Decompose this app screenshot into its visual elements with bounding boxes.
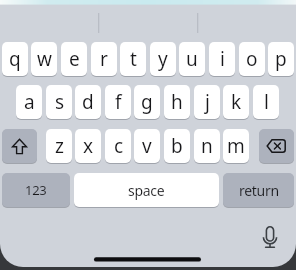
button[interactable]: b bbox=[164, 129, 190, 163]
button[interactable]: n bbox=[194, 129, 220, 163]
staticText: k bbox=[231, 89, 241, 115]
button[interactable]: h bbox=[164, 85, 190, 119]
staticText: m bbox=[227, 133, 245, 159]
staticText: 123 bbox=[25, 181, 47, 199]
staticText: g bbox=[141, 89, 153, 115]
staticText: q bbox=[9, 46, 21, 72]
button[interactable] bbox=[259, 129, 294, 163]
button[interactable]: m bbox=[223, 129, 249, 163]
button[interactable]: l bbox=[253, 85, 279, 119]
button[interactable]: w bbox=[31, 42, 57, 76]
staticText: v bbox=[142, 133, 152, 159]
button[interactable]: k bbox=[223, 85, 249, 119]
staticText: c bbox=[114, 133, 123, 159]
button[interactable]: o bbox=[239, 42, 265, 76]
button[interactable]: q bbox=[2, 42, 28, 76]
button[interactable]: i bbox=[209, 42, 235, 76]
staticText: e bbox=[69, 46, 80, 72]
staticText: j bbox=[205, 89, 210, 115]
button[interactable]: space bbox=[74, 173, 219, 207]
staticText: u bbox=[186, 46, 198, 72]
button[interactable]: v bbox=[134, 129, 160, 163]
staticText: b bbox=[171, 133, 183, 159]
button[interactable]: return bbox=[223, 173, 294, 207]
staticText: h bbox=[171, 89, 183, 115]
staticText: space bbox=[128, 181, 165, 200]
button[interactable]: u bbox=[179, 42, 205, 76]
button[interactable]: c bbox=[105, 129, 131, 163]
button[interactable]: g bbox=[134, 85, 160, 119]
staticText: t bbox=[130, 46, 137, 72]
button[interactable] bbox=[2, 129, 37, 163]
staticText: r bbox=[100, 46, 108, 72]
button[interactable]: t bbox=[120, 42, 146, 76]
button[interactable]: s bbox=[46, 85, 72, 119]
staticText: n bbox=[201, 133, 213, 159]
staticText: l bbox=[264, 89, 269, 115]
staticText: d bbox=[82, 89, 94, 115]
staticText: x bbox=[83, 133, 93, 159]
button[interactable]: z bbox=[46, 129, 72, 163]
button[interactable]: 123 bbox=[2, 173, 70, 207]
staticText: i bbox=[220, 46, 225, 72]
button[interactable]: e bbox=[61, 42, 87, 76]
staticText: p bbox=[275, 46, 287, 72]
staticText: a bbox=[24, 89, 35, 115]
staticText: return bbox=[239, 181, 279, 200]
button[interactable]: p bbox=[268, 42, 294, 76]
staticText: y bbox=[158, 46, 168, 72]
button[interactable]: x bbox=[75, 129, 101, 163]
staticText: z bbox=[55, 133, 64, 159]
staticText: w bbox=[37, 46, 52, 72]
staticText: f bbox=[115, 89, 122, 115]
staticText: o bbox=[246, 46, 258, 72]
staticText: s bbox=[55, 89, 64, 115]
button[interactable]: d bbox=[75, 85, 101, 119]
button[interactable]: y bbox=[150, 42, 176, 76]
button[interactable]: r bbox=[91, 42, 117, 76]
button[interactable]: a bbox=[16, 85, 42, 119]
button[interactable]: j bbox=[194, 85, 220, 119]
button[interactable]: f bbox=[105, 85, 131, 119]
